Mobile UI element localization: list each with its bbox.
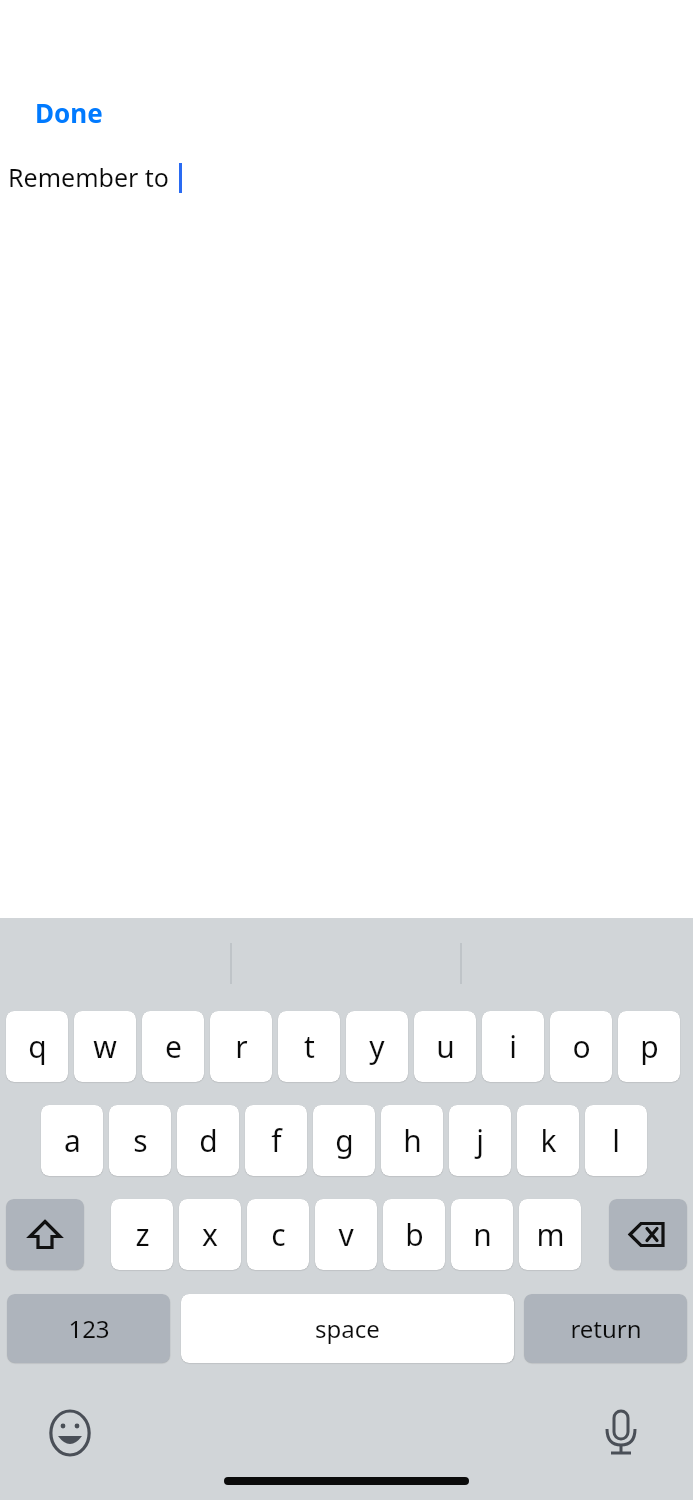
button[interactable]: u [414,1011,476,1082]
staticText: z [135,1214,150,1255]
staticText: return [570,1312,642,1345]
button[interactable]: l [585,1105,647,1176]
staticText: x [202,1214,218,1255]
staticText: Remember to [8,160,169,194]
staticText: j [476,1120,484,1161]
staticText: g [335,1120,354,1161]
button[interactable]: w [74,1011,136,1082]
button[interactable]: g [313,1105,375,1176]
button[interactable]: x [179,1199,241,1270]
button[interactable]: Done [24,90,116,134]
staticText: space [315,1312,380,1345]
staticText: w [93,1026,117,1067]
staticText: v [338,1214,354,1255]
button[interactable]: Shift [6,1199,84,1270]
button[interactable]: b [383,1199,445,1270]
button[interactable]: r [210,1011,272,1082]
staticText: l [612,1120,620,1161]
button[interactable]: space [181,1294,514,1363]
staticText: f [271,1120,282,1161]
staticText: e [165,1026,182,1067]
button[interactable]: 123 [7,1294,170,1363]
button[interactable]: z [111,1199,173,1270]
button[interactable]: a [41,1105,103,1176]
staticText: y [369,1026,385,1067]
staticText: d [199,1120,218,1161]
staticText: 123 [68,1312,110,1345]
button[interactable]: s [109,1105,171,1176]
staticText: s [133,1120,148,1161]
staticText: i [509,1026,517,1067]
button[interactable]: y [346,1011,408,1082]
button[interactable]: f [245,1105,307,1176]
button[interactable]: i [482,1011,544,1082]
button[interactable]: d [177,1105,239,1176]
button[interactable]: n [451,1199,513,1270]
button[interactable]: Emoji [44,1407,96,1459]
staticText: n [473,1214,492,1255]
button[interactable]: k [517,1105,579,1176]
button[interactable]: v [315,1199,377,1270]
staticText: h [403,1120,422,1161]
button[interactable]: c [247,1199,309,1270]
button[interactable]: m [519,1199,581,1270]
staticText: t [304,1026,315,1067]
button[interactable]: e [142,1011,204,1082]
staticText: o [572,1026,591,1067]
button[interactable]: h [381,1105,443,1176]
button[interactable]: t [278,1011,340,1082]
button[interactable]: p [618,1011,680,1082]
staticText: c [271,1214,286,1255]
button[interactable]: Backspace [609,1199,687,1270]
staticText: a [64,1120,81,1161]
staticText: r [235,1026,248,1067]
button[interactable]: return [524,1294,687,1363]
staticText: m [536,1214,565,1255]
button[interactable]: Dictation [595,1407,647,1459]
button[interactable]: j [449,1105,511,1176]
staticText: q [28,1026,47,1067]
staticText: b [405,1214,424,1255]
button[interactable]: o [550,1011,612,1082]
staticText: p [640,1026,659,1067]
button[interactable]: q [6,1011,68,1082]
button[interactable]: Remember to [0,148,693,206]
staticText: u [436,1026,455,1067]
staticText: Done [35,95,103,130]
staticText: k [540,1120,557,1161]
